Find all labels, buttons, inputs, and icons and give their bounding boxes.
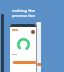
button[interactable] [37, 63, 41, 66]
button[interactable] [13, 61, 36, 64]
staticText: making the [12, 8, 35, 13]
staticText: process fun [12, 13, 35, 18]
button[interactable] [36, 22, 41, 72]
button[interactable] [10, 24, 36, 72]
